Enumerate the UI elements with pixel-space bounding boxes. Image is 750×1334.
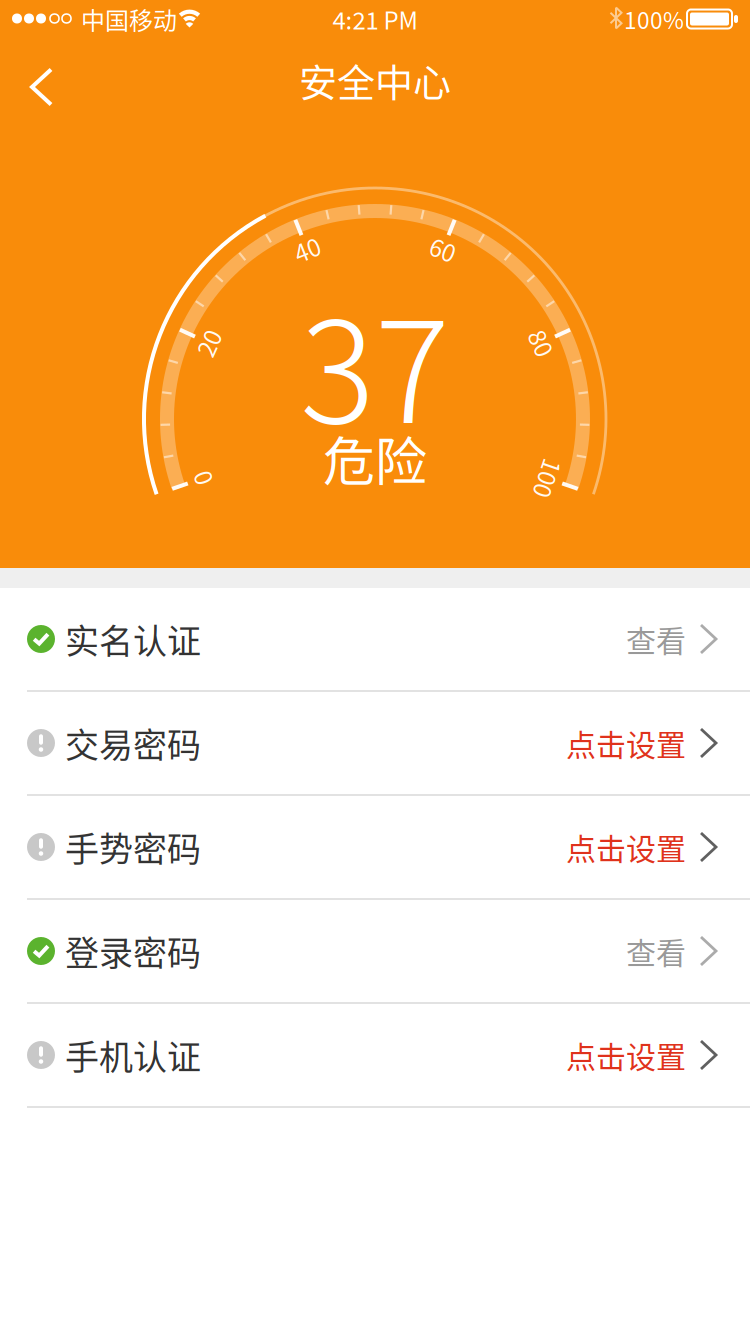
staticText: 登录密码 xyxy=(65,926,201,976)
staticText: 危险 xyxy=(323,420,427,496)
staticText: 40 xyxy=(294,232,320,266)
button[interactable] xyxy=(32,69,51,104)
button[interactable]: 手机认证 xyxy=(0,1004,750,1108)
staticText: 100% xyxy=(624,3,684,35)
button[interactable]: 登录密码 xyxy=(0,900,750,1004)
staticText: 60 xyxy=(430,232,456,266)
staticText: 查看 xyxy=(626,929,686,973)
staticText: 安全中心 xyxy=(299,52,451,107)
staticText: 中国移动 xyxy=(81,2,177,36)
staticText: 80 xyxy=(528,325,554,360)
staticText: 20 xyxy=(196,325,222,360)
button[interactable]: 手势密码 xyxy=(0,796,750,900)
staticText: 手机认证 xyxy=(65,1030,201,1080)
staticText: 100 xyxy=(528,461,567,496)
button[interactable]: 实名认证 xyxy=(0,588,750,692)
staticText: 实名认证 xyxy=(65,614,201,664)
staticText: 37 xyxy=(300,261,450,463)
staticText: 交易密码 xyxy=(65,718,201,768)
staticText: 点击设置 xyxy=(566,825,686,869)
staticText: 点击设置 xyxy=(566,721,686,765)
staticText: 查看 xyxy=(626,617,686,661)
staticText: 0 xyxy=(195,461,208,496)
button[interactable]: 交易密码 xyxy=(0,692,750,796)
staticText: 4:21 PM xyxy=(332,2,417,36)
staticText: 手势密码 xyxy=(65,822,201,872)
staticText: 点击设置 xyxy=(566,1033,686,1077)
